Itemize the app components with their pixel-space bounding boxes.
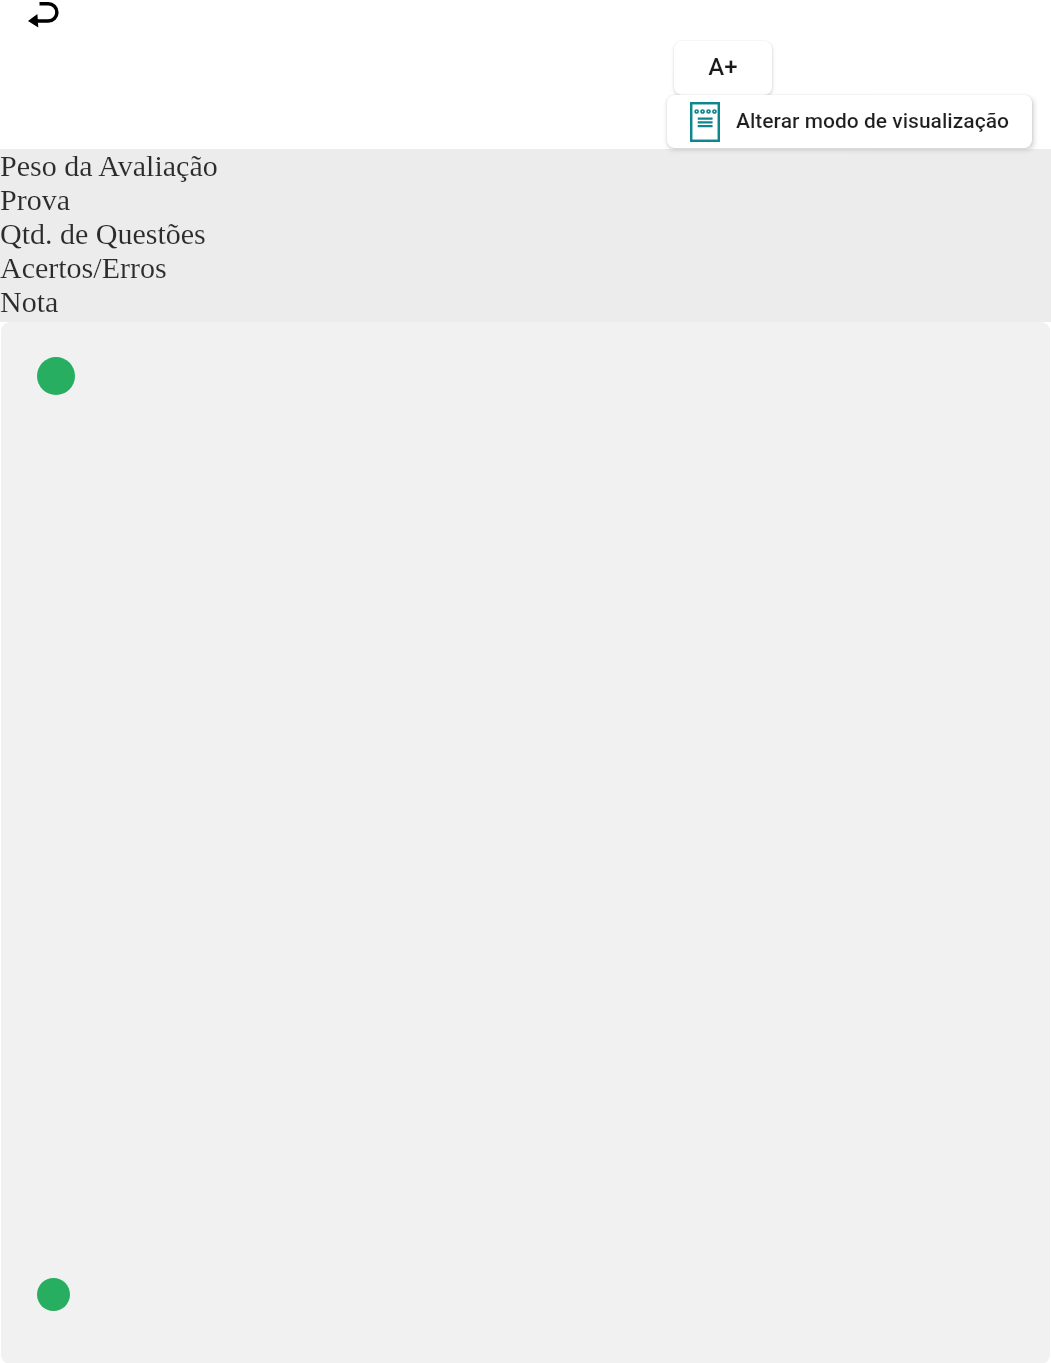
staticText: A+ xyxy=(708,53,738,81)
button[interactable]: Status xyxy=(37,357,75,395)
staticText: Peso da Avaliação Prova Qtd. de Questões… xyxy=(0,149,218,319)
button[interactable]: Status xyxy=(37,1278,70,1311)
button[interactable]: A+ xyxy=(674,41,772,95)
button[interactable]: Alterar modo de visualização xyxy=(667,95,1032,148)
staticText: Alterar modo de visualização xyxy=(736,109,1009,134)
button[interactable]: Voltar xyxy=(16,0,74,50)
